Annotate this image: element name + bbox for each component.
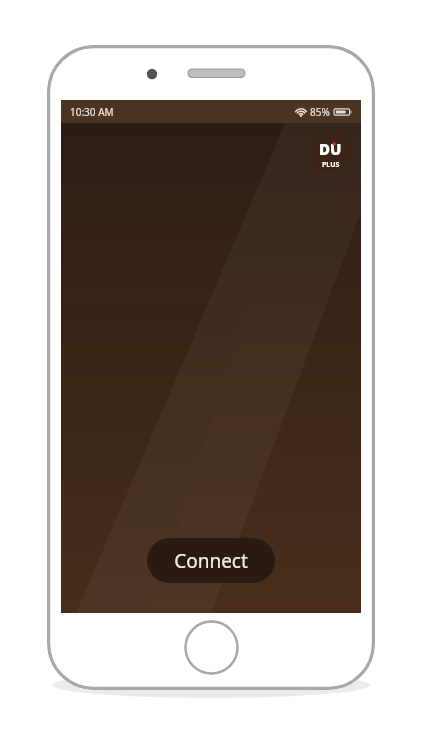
staticText: Connect [174,548,248,574]
button[interactable]: Connect [147,538,275,583]
button[interactable]: Home [184,620,239,675]
staticText: 10:30 AM [70,105,114,119]
staticText: DU [319,139,342,159]
staticText: 85% [310,105,330,119]
staticText: PLUS [322,160,340,170]
button[interactable]: DU PLUS logo [312,136,348,172]
